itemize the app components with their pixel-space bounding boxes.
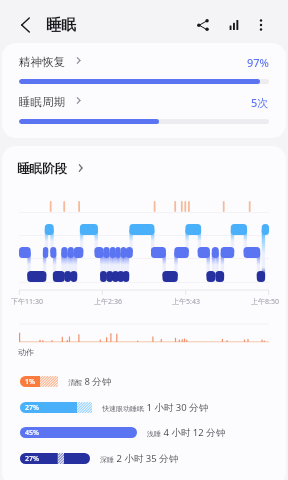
- staticText: 睡眠周期: [19, 95, 65, 109]
- staticText: 动作: [18, 347, 34, 357]
- staticText: 上午8:50: [251, 297, 279, 307]
- staticText: 8 分钟: [82, 375, 112, 388]
- staticText: 1 小时 30 分钟: [144, 401, 209, 414]
- button[interactable]: [10, 399, 278, 417]
- staticText: 上午2:36: [94, 297, 122, 307]
- staticText: 5次: [251, 95, 269, 110]
- staticText: 浅睡: [147, 429, 161, 438]
- staticText: 快速眼动睡眠: [102, 404, 144, 413]
- staticText: 睡眠阶段: [17, 161, 67, 177]
- staticText: 27%: [25, 403, 39, 413]
- staticText: 睡眠: [46, 16, 76, 35]
- button[interactable]: [10, 450, 278, 468]
- staticText: 上午5:43: [172, 297, 200, 307]
- staticText: 1%: [25, 377, 35, 387]
- button[interactable]: Back: [9, 9, 41, 41]
- staticText: 45%: [25, 428, 39, 438]
- staticText: 精神恢复: [19, 55, 65, 69]
- staticText: 97%: [247, 55, 269, 70]
- button[interactable]: [12, 157, 94, 181]
- button[interactable]: [10, 89, 278, 127]
- staticText: 深睡: [100, 455, 114, 464]
- staticText: 4 小时 12 分钟: [161, 426, 226, 439]
- staticText: 清醒: [68, 378, 82, 387]
- button[interactable]: [10, 373, 278, 391]
- button[interactable]: [10, 49, 278, 87]
- staticText: 27%: [25, 454, 39, 464]
- staticText: 下午11:30: [11, 297, 43, 307]
- button[interactable]: More options: [246, 10, 276, 40]
- staticText: 2 小时 35 分钟: [114, 452, 179, 465]
- button[interactable]: [10, 424, 278, 442]
- button[interactable]: Statistics: [219, 10, 249, 40]
- button[interactable]: Share: [188, 10, 218, 40]
